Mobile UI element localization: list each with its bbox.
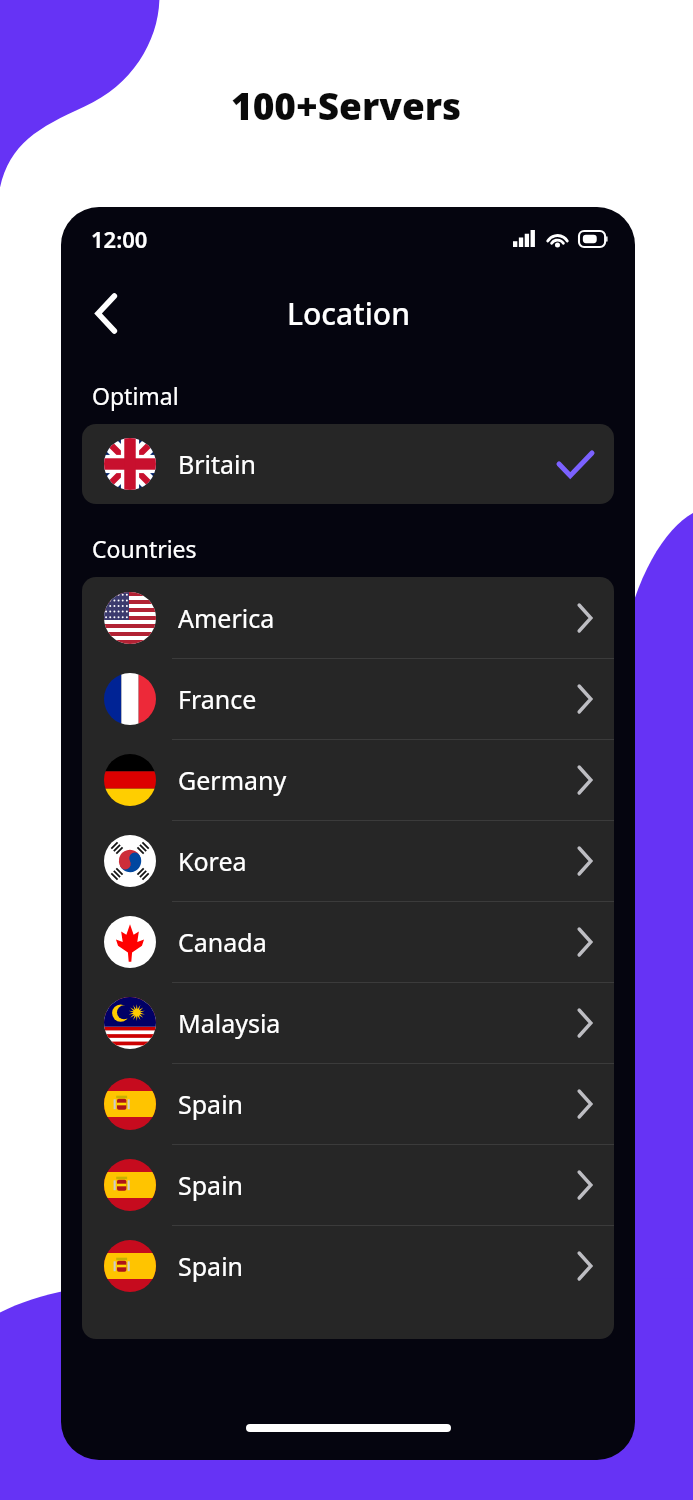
staticText: Germany: [178, 763, 287, 797]
button[interactable]: Spain: [82, 1225, 614, 1306]
staticText: Countries: [92, 533, 197, 564]
button[interactable]: Britain: [82, 424, 614, 504]
staticText: Britain: [178, 447, 256, 481]
staticText: Location: [287, 293, 410, 334]
staticText: Canada: [178, 925, 267, 959]
staticText: France: [178, 682, 257, 716]
staticText: Optimal: [92, 380, 179, 411]
staticText: Spain: [178, 1087, 244, 1121]
staticText: Malaysia: [178, 1006, 281, 1040]
staticText: 100+Servers: [231, 80, 462, 130]
staticText: Spain: [178, 1168, 244, 1202]
button[interactable]: Malaysia: [82, 982, 614, 1063]
button[interactable]: Germany: [82, 739, 614, 820]
button[interactable]: Canada: [82, 901, 614, 982]
button[interactable]: France: [82, 658, 614, 739]
button[interactable]: Spain: [82, 1144, 614, 1225]
button[interactable]: Back: [75, 282, 137, 344]
button[interactable]: Spain: [82, 1063, 614, 1144]
staticText: America: [178, 601, 275, 635]
button[interactable]: America: [82, 577, 614, 658]
staticText: Spain: [178, 1249, 244, 1283]
staticText: Korea: [178, 844, 247, 878]
button[interactable]: Korea: [82, 820, 614, 901]
staticText: 12:00: [91, 224, 148, 254]
